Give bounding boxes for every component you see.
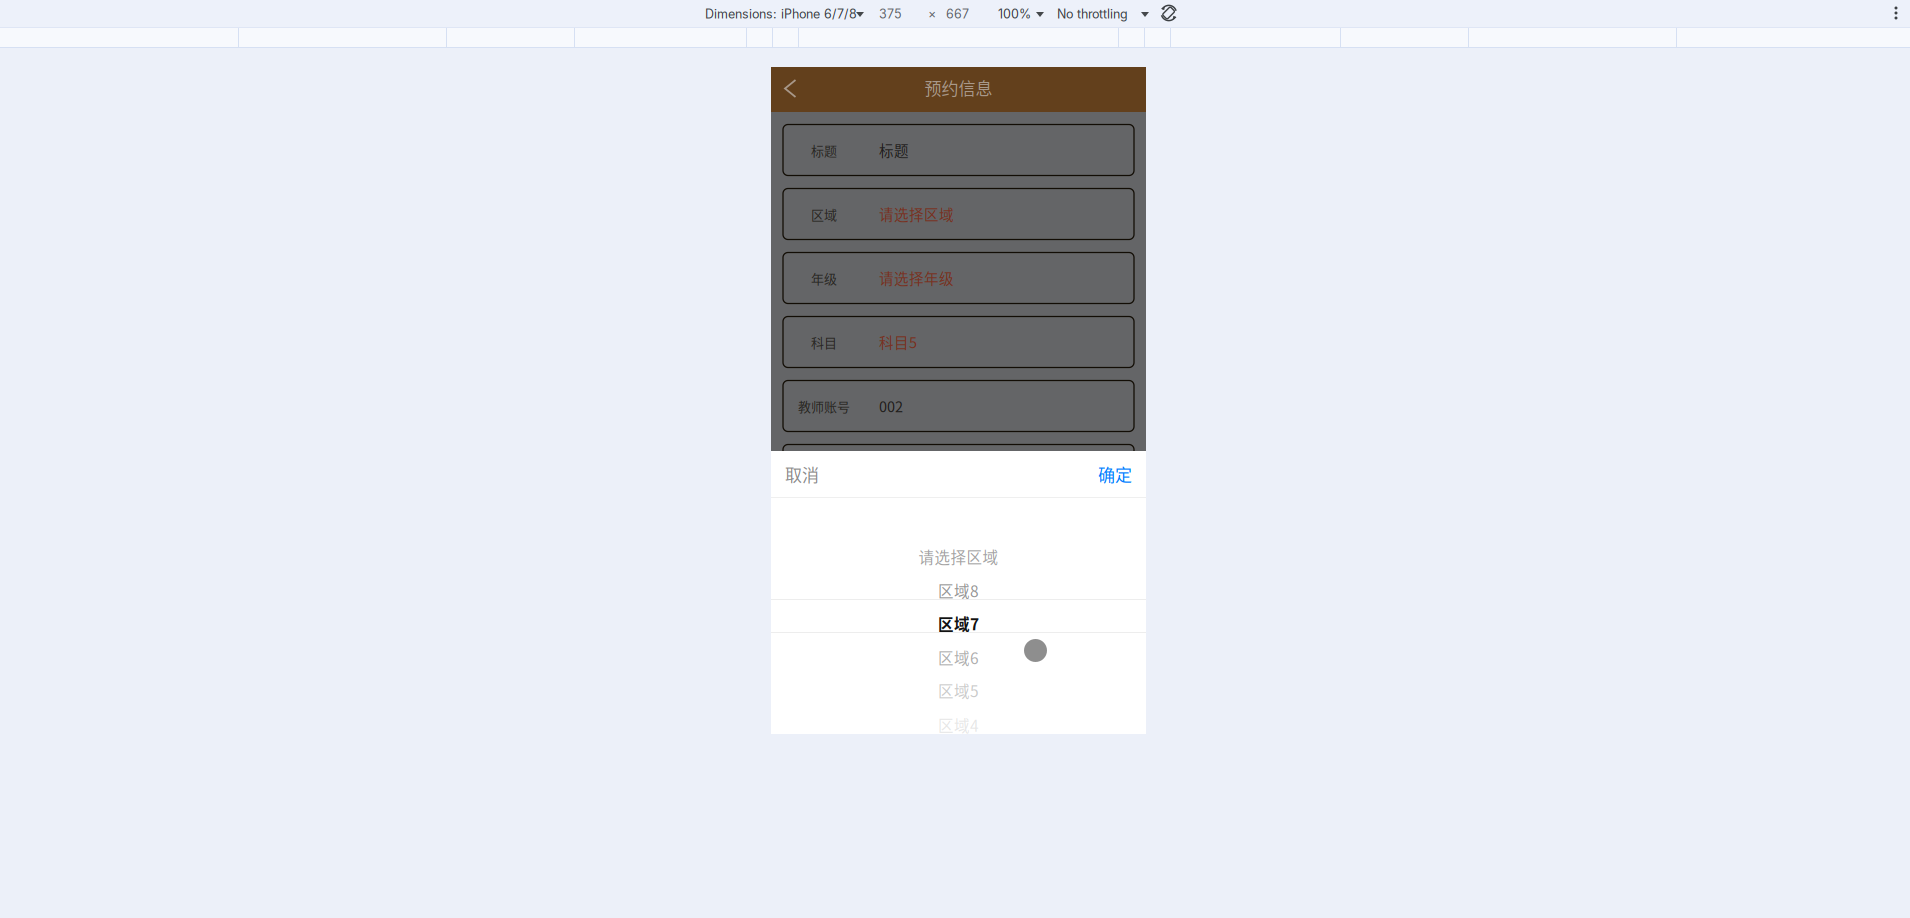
staticText: 预约信息: [924, 75, 992, 100]
staticText: 667: [946, 6, 969, 21]
staticText: 科目: [811, 333, 837, 351]
staticText: 取消: [785, 462, 819, 486]
staticText: No throttling: [1057, 6, 1128, 21]
staticText: 标题: [811, 141, 837, 159]
button[interactable]: 标题: [783, 124, 1134, 175]
staticText: 请选择区域: [879, 203, 954, 224]
button[interactable]: 科目: [783, 316, 1134, 367]
staticText: 区域4: [938, 714, 979, 736]
button[interactable]: More options: [1888, 6, 1904, 20]
button[interactable]: 区域: [783, 188, 1134, 239]
button[interactable]: Rotate device: [1159, 3, 1179, 23]
button[interactable]: 年级: [783, 252, 1134, 303]
staticText: 区域8: [938, 579, 979, 602]
staticText: 请选择区域: [918, 545, 998, 568]
staticText: 区域7: [938, 612, 979, 635]
staticText: 区域5: [938, 679, 979, 702]
staticText: 教师账号: [798, 397, 850, 415]
button[interactable]: No throttling: [1057, 1, 1155, 27]
button[interactable]: 100%: [998, 1, 1050, 27]
staticText: 375: [879, 6, 902, 21]
staticText: 区域6: [938, 646, 979, 669]
staticText: 标题: [879, 139, 909, 160]
staticText: 100%: [998, 6, 1031, 21]
staticText: 科目5: [879, 331, 917, 352]
staticText: 确定: [1098, 462, 1132, 486]
button[interactable]: 确定: [1072, 451, 1152, 497]
staticText: 002: [879, 395, 903, 416]
button[interactable]: 上课时间: [783, 444, 1134, 495]
staticText: Dimensions: iPhone 6/7/8: [705, 6, 857, 21]
button[interactable]: Dimensions: iPhone 6/7/8: [705, 1, 871, 27]
staticText: 年级: [811, 269, 837, 287]
staticText: 区域: [811, 205, 837, 223]
staticText: 请选择年级: [879, 267, 954, 288]
button[interactable]: 取消: [771, 451, 851, 497]
button[interactable]: Back: [771, 67, 807, 112]
button[interactable]: 教师账号: [783, 380, 1134, 431]
staticText: ×: [928, 6, 936, 21]
staticText: 上课时间: [798, 461, 850, 479]
